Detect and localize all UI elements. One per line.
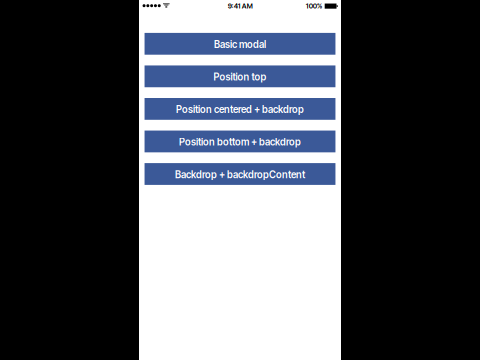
staticText: Position top — [213, 71, 266, 83]
staticText: Position bottom + backdrop — [179, 136, 301, 148]
staticText: 100% — [306, 2, 323, 10]
button[interactable]: Position centered + backdrop — [145, 98, 335, 120]
staticText: Position centered + backdrop — [176, 104, 304, 115]
button[interactable]: Position top — [145, 65, 335, 87]
staticText: 9:41 AM — [228, 2, 253, 10]
button[interactable]: Basic modal — [145, 33, 335, 55]
button[interactable]: Backdrop + backdropContent — [145, 163, 335, 185]
staticText: Basic modal — [214, 38, 266, 50]
button[interactable]: Position bottom + backdrop — [145, 130, 335, 152]
staticText: Backdrop + backdropContent — [175, 169, 305, 180]
